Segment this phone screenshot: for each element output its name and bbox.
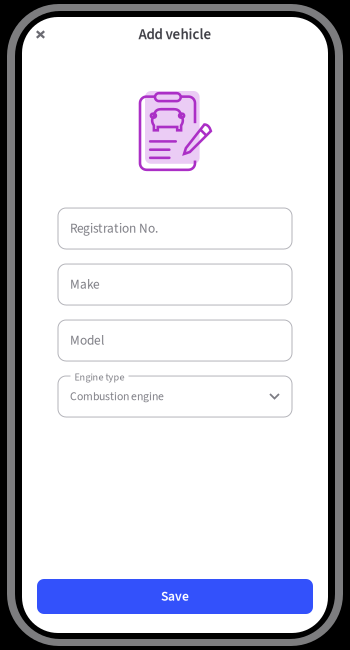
staticText: Registration No. <box>70 219 158 238</box>
button[interactable]: Close <box>22 17 59 52</box>
button[interactable]: Save <box>37 579 313 614</box>
staticText: Engine type <box>74 370 124 384</box>
staticText: Add vehicle <box>138 24 211 45</box>
staticText: Save <box>161 587 189 606</box>
staticText: Model <box>70 331 104 350</box>
button[interactable]: Combustion engine <box>58 376 292 417</box>
button[interactable]: Registration No. <box>58 208 292 249</box>
staticText: Make <box>70 275 100 294</box>
button[interactable]: Make <box>58 264 292 305</box>
button[interactable]: Model <box>58 320 292 361</box>
staticText: Combustion engine <box>70 388 164 405</box>
